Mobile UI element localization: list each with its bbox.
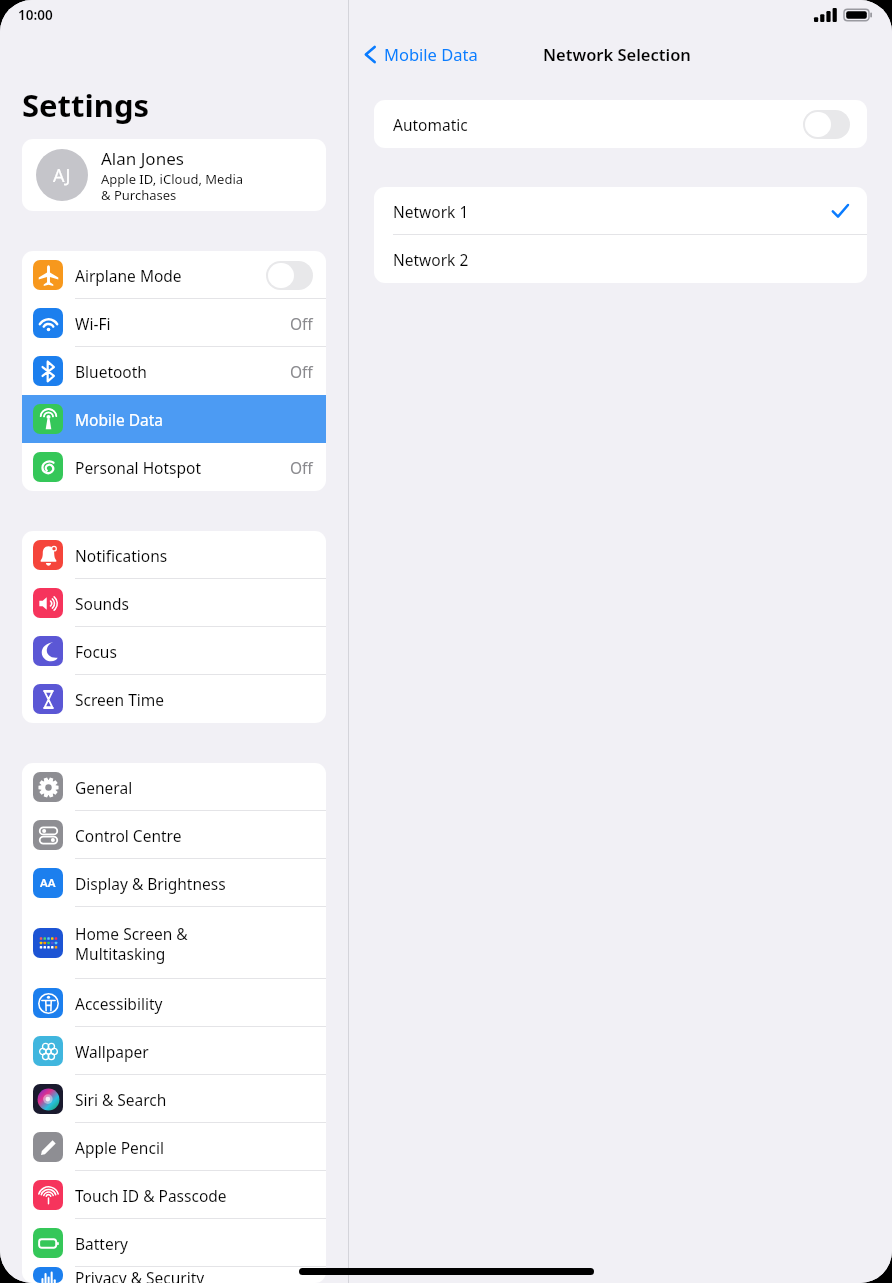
- button[interactable]: Mobile Data: [22, 395, 326, 443]
- staticText: Control Centre: [75, 825, 182, 846]
- staticText: Personal Hotspot: [75, 457, 202, 478]
- staticText: Mobile Data: [75, 409, 164, 430]
- button[interactable]: Network 1: [374, 187, 867, 235]
- staticText: Screen Time: [75, 689, 164, 710]
- button[interactable]: Wallpaper: [22, 1027, 326, 1075]
- staticText: Sounds: [75, 593, 130, 614]
- staticText: AA: [40, 875, 56, 891]
- button[interactable]: Apple Pencil: [22, 1123, 326, 1171]
- button[interactable]: Personal Hotspot: [22, 443, 326, 491]
- button[interactable]: Bluetooth: [22, 347, 326, 395]
- button[interactable]: AA: [22, 859, 326, 907]
- staticText: Battery: [75, 1233, 129, 1254]
- staticText: Notifications: [75, 545, 168, 566]
- staticText: Network 1: [393, 201, 469, 222]
- staticText: Accessibility: [75, 993, 163, 1014]
- staticText: General: [75, 777, 133, 798]
- button[interactable]: Screen Time: [22, 675, 326, 723]
- staticText: AJ: [53, 163, 71, 188]
- staticText: Focus: [75, 641, 117, 662]
- staticText: Settings: [22, 84, 150, 126]
- staticText: Privacy & Security: [75, 1267, 205, 1283]
- staticText: 10:00: [18, 6, 53, 24]
- button[interactable]: Battery: [22, 1219, 326, 1267]
- staticText: Bluetooth: [75, 361, 147, 382]
- staticText: Airplane Mode: [75, 265, 182, 286]
- staticText: Mobile Data: [384, 43, 478, 65]
- staticText: Apple ID, iCloud, Media & Purchases: [101, 170, 244, 204]
- staticText: Touch ID & Passcode: [75, 1185, 227, 1206]
- button[interactable]: Touch ID & Passcode: [22, 1171, 326, 1219]
- staticText: Siri & Search: [75, 1089, 167, 1110]
- button[interactable]: General: [22, 763, 326, 811]
- button[interactable]: Home Screen & Multitasking: [22, 907, 326, 979]
- staticText: Wi-Fi: [75, 313, 111, 334]
- button[interactable]: Sounds: [22, 579, 326, 627]
- button[interactable]: Automatic: [374, 100, 867, 148]
- button[interactable]: Privacy & Security: [22, 1267, 326, 1283]
- button[interactable]: Mobile Data: [364, 43, 478, 65]
- staticText: Wallpaper: [75, 1041, 149, 1062]
- staticText: Apple Pencil: [75, 1137, 164, 1158]
- button[interactable]: Automatic toggle: [803, 110, 850, 139]
- button[interactable]: AJ: [22, 139, 326, 211]
- button[interactable]: Notifications: [22, 531, 326, 579]
- staticText: Network 2: [393, 249, 469, 270]
- button[interactable]: Network 2: [374, 235, 867, 283]
- staticText: Off: [290, 361, 313, 382]
- button[interactable]: Accessibility: [22, 979, 326, 1027]
- staticText: Alan Jones: [101, 147, 184, 170]
- button[interactable]: Control Centre: [22, 811, 326, 859]
- staticText: Network Selection: [543, 43, 691, 65]
- button[interactable]: Wi-Fi: [22, 299, 326, 347]
- staticText: Off: [290, 313, 313, 334]
- staticText: Automatic: [393, 114, 468, 135]
- staticText: Off: [290, 457, 313, 478]
- button[interactable]: Focus: [22, 627, 326, 675]
- button[interactable]: Airplane Mode: [22, 251, 326, 299]
- staticText: Display & Brightness: [75, 873, 226, 894]
- staticText: Home Screen & Multitasking: [75, 923, 188, 964]
- button[interactable]: Siri & Search: [22, 1075, 326, 1123]
- button[interactable]: Airplane Mode toggle: [266, 261, 313, 290]
- other: Selected: [830, 201, 850, 221]
